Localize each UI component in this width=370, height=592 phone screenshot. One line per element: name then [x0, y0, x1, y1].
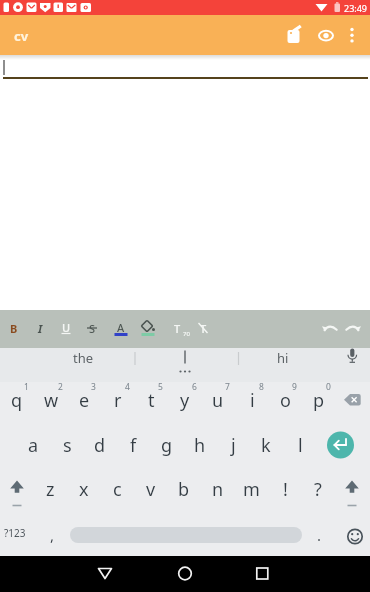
button[interactable]: ?: [302, 468, 334, 510]
button[interactable]: the: [38, 343, 128, 373]
button[interactable]: B: [1, 311, 27, 345]
button[interactable]: g: [151, 424, 183, 466]
staticText: 2: [58, 381, 63, 393]
button[interactable]: v: [135, 468, 167, 510]
button[interactable]: .: [304, 515, 334, 555]
button[interactable]: A: [108, 310, 134, 344]
staticText: h: [194, 433, 206, 458]
staticText: !: [283, 477, 288, 502]
staticText: 4: [125, 381, 130, 393]
button[interactable]: w: [35, 379, 67, 421]
staticText: hi: [277, 349, 289, 367]
staticText: o: [280, 388, 291, 413]
button[interactable]: ,: [37, 515, 67, 555]
staticText: ?: [314, 477, 322, 502]
button[interactable]: a: [17, 424, 49, 466]
button[interactable]: [337, 468, 368, 510]
button[interactable]: p: [303, 379, 335, 421]
button[interactable]: [282, 23, 306, 47]
button[interactable]: S: [79, 311, 105, 345]
button[interactable]: ?123: [0, 513, 31, 553]
staticText: 7: [225, 381, 230, 393]
button[interactable]: [1, 468, 32, 510]
staticText: .: [317, 525, 322, 545]
staticText: 6: [192, 381, 197, 393]
button[interactable]: s: [51, 424, 83, 466]
staticText: y: [180, 388, 190, 413]
staticText: e: [79, 388, 90, 413]
button[interactable]: r: [102, 379, 134, 421]
staticText: cv: [14, 27, 29, 45]
button[interactable]: T: [164, 311, 190, 345]
staticText: ,: [50, 525, 55, 545]
staticText: 9: [292, 381, 297, 393]
button[interactable]: [324, 424, 357, 466]
staticText: p: [313, 388, 325, 413]
button[interactable]: t: [135, 379, 167, 421]
staticText: g: [161, 433, 173, 458]
staticText: the: [73, 349, 94, 367]
button[interactable]: [340, 518, 370, 555]
button[interactable]: i: [236, 379, 268, 421]
staticText: a: [28, 433, 39, 458]
staticText: 1: [24, 381, 29, 393]
button[interactable]: f: [117, 424, 149, 466]
button[interactable]: d: [84, 424, 116, 466]
staticText: l: [298, 433, 303, 458]
button[interactable]: j: [217, 424, 249, 466]
staticText: S: [89, 321, 96, 336]
button[interactable]: c: [101, 468, 133, 510]
button[interactable]: q: [1, 379, 33, 421]
staticText: j: [231, 433, 236, 458]
button[interactable]: [87, 556, 123, 592]
button[interactable]: I: [27, 311, 53, 345]
button[interactable]: T: [190, 311, 216, 345]
staticText: m: [243, 477, 260, 502]
button[interactable]: [244, 556, 280, 592]
staticText: b: [178, 477, 190, 502]
button[interactable]: l: [284, 424, 316, 466]
staticText: k: [261, 433, 271, 458]
button[interactable]: e: [68, 379, 100, 421]
button[interactable]: b: [168, 468, 200, 510]
button[interactable]: m: [235, 468, 267, 510]
button[interactable]: u: [202, 379, 234, 421]
staticText: 0: [326, 381, 331, 393]
staticText: ?123: [4, 526, 26, 540]
button[interactable]: n: [202, 468, 234, 510]
button[interactable]: !: [269, 468, 301, 510]
staticText: n: [212, 477, 224, 502]
staticText: T: [200, 321, 207, 336]
staticText: s: [63, 433, 72, 458]
button[interactable]: k: [250, 424, 282, 466]
button[interactable]: hi: [238, 343, 328, 373]
button[interactable]: U: [53, 310, 79, 344]
button[interactable]: x: [68, 468, 100, 510]
button[interactable]: [314, 23, 338, 47]
staticText: U: [62, 320, 71, 335]
staticText: A: [117, 320, 125, 335]
staticText: u: [212, 388, 224, 413]
button[interactable]: z: [34, 468, 66, 510]
staticText: r: [114, 388, 122, 413]
staticText: 5: [158, 381, 163, 393]
button[interactable]: [336, 379, 369, 421]
staticText: B: [10, 321, 18, 336]
staticText: t: [148, 388, 155, 413]
staticText: z: [46, 477, 55, 502]
button[interactable]: [167, 556, 203, 592]
staticText: v: [146, 477, 156, 502]
staticText: f: [130, 433, 137, 458]
staticText: q: [11, 388, 23, 413]
staticText: I: [38, 321, 43, 336]
staticText: 3: [91, 381, 96, 393]
button[interactable]: [341, 23, 363, 47]
staticText: w: [44, 388, 59, 413]
staticText: i: [250, 388, 255, 413]
button[interactable]: o: [269, 379, 301, 421]
staticText: T: [174, 321, 181, 336]
button[interactable]: [140, 342, 230, 372]
button[interactable]: y: [169, 379, 201, 421]
button[interactable]: h: [184, 424, 216, 466]
